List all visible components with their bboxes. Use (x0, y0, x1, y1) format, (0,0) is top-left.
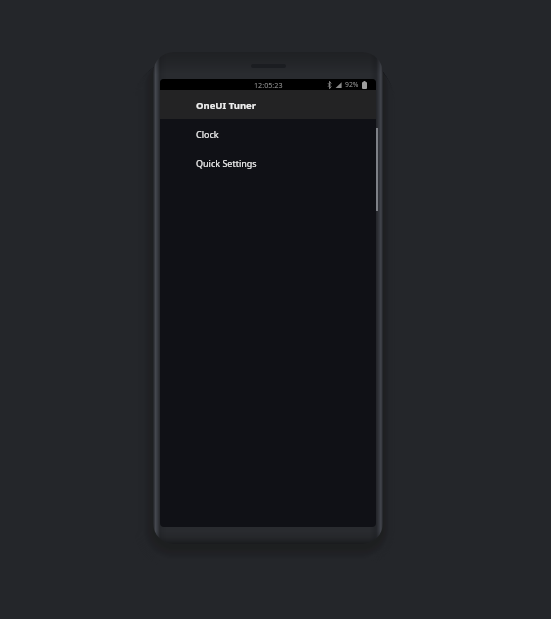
other: Signal strength (335, 81, 342, 89)
staticText: Quick Settings (196, 157, 257, 169)
staticText: Clock (196, 128, 219, 140)
staticText: 92% (345, 80, 359, 89)
button[interactable]: Quick Settings (160, 148, 376, 177)
other: Bluetooth (327, 81, 332, 89)
staticText: 12:05:23 (254, 80, 283, 90)
staticText: OneUI Tuner (196, 99, 256, 112)
other: Battery 92 percent (362, 81, 367, 89)
button[interactable]: OneUI Tuner (160, 90, 376, 119)
button[interactable]: Clock (160, 119, 376, 148)
